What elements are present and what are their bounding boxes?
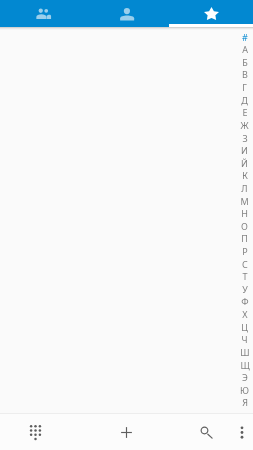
button[interactable]: Г [236,81,253,93]
button[interactable]: Е [236,106,253,118]
staticText: Т [242,270,248,282]
staticText: О [241,220,248,232]
staticText: Ч [241,333,248,345]
button[interactable]: З [236,132,253,144]
button[interactable]: И [236,144,253,156]
button[interactable]: Щ [236,359,253,371]
button[interactable]: Ж [236,119,253,131]
button[interactable]: Д [236,94,253,106]
button[interactable]: More options [226,414,253,450]
staticText: М [240,195,249,207]
staticText: У [242,283,248,295]
button[interactable]: Х [236,308,253,320]
staticText: Н [241,207,248,219]
staticText: З [242,132,248,144]
button[interactable]: Б [236,56,253,68]
staticText: Ж [240,119,249,131]
staticText: Щ [240,359,250,371]
button[interactable]: Н [236,207,253,219]
staticText: # [242,31,248,43]
staticText: Я [242,396,248,408]
button[interactable]: В [236,68,253,80]
staticText: Л [241,182,248,194]
button[interactable]: # [236,31,253,43]
staticText: Х [242,308,248,320]
button[interactable]: Favorites [169,0,253,27]
staticText: Э [242,371,248,383]
staticText: Р [242,245,248,257]
button[interactable]: Contacts [85,0,169,27]
button[interactable]: Л [236,182,253,194]
staticText: А [242,43,248,55]
button[interactable]: С [236,258,253,270]
button[interactable]: У [236,283,253,295]
staticText: Ф [241,295,249,307]
staticText: Ш [240,346,250,358]
staticText: И [241,144,248,156]
button[interactable]: К [236,169,253,181]
button[interactable]: А [236,43,253,55]
staticText: Б [242,56,248,68]
button[interactable]: Ц [236,321,253,333]
staticText: Й [241,157,248,169]
button[interactable]: Т [236,270,253,282]
staticText: С [242,258,248,270]
button[interactable]: Й [236,157,253,169]
button[interactable]: Ч [236,333,253,345]
button[interactable]: Ш [236,346,253,358]
button[interactable]: П [236,232,253,244]
button[interactable]: Р [236,245,253,257]
button[interactable]: Add contact [111,414,142,450]
staticText: Е [242,106,248,118]
staticText: Ю [240,384,249,396]
button[interactable]: Dialpad [20,414,51,450]
button[interactable]: Я [236,396,253,408]
staticText: Д [241,94,248,106]
staticText: П [241,232,248,244]
button[interactable]: Search [191,414,222,450]
button[interactable]: Groups [0,0,85,27]
button[interactable]: Э [236,371,253,383]
staticText: К [242,169,248,181]
staticText: В [242,68,248,80]
button[interactable]: Ю [236,384,253,396]
button[interactable]: О [236,220,253,232]
staticText: Г [242,81,247,93]
staticText: Ц [241,321,248,333]
button[interactable]: Ф [236,295,253,307]
button[interactable]: М [236,195,253,207]
